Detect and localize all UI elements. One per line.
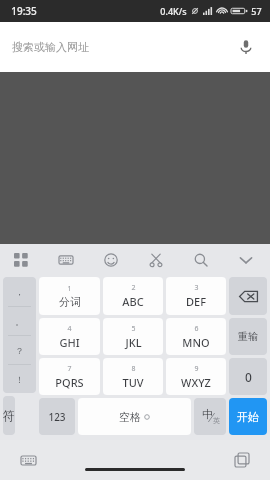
staticText: GHI bbox=[59, 335, 80, 350]
staticText: 123 bbox=[48, 410, 66, 424]
button[interactable]: Recent apps bbox=[230, 448, 254, 472]
staticText: 中 bbox=[202, 407, 213, 421]
button[interactable]: 6 bbox=[166, 318, 226, 355]
button[interactable]: Emoji bbox=[100, 249, 122, 271]
staticText: 英 bbox=[213, 416, 220, 425]
button[interactable]: 8 bbox=[103, 358, 163, 395]
staticText: 6 bbox=[194, 324, 199, 334]
button[interactable]: Search bbox=[190, 249, 212, 271]
button[interactable]: Switch keyboard bbox=[16, 448, 40, 472]
staticText: 8 bbox=[131, 364, 136, 374]
button[interactable]: 搜索或输入网址 bbox=[0, 22, 270, 72]
button[interactable]: 1 bbox=[39, 277, 100, 315]
staticText: 2 bbox=[131, 283, 136, 293]
button[interactable]: Backspace bbox=[229, 277, 267, 315]
button[interactable]: 4 bbox=[39, 318, 100, 355]
button[interactable]: 5 bbox=[103, 318, 163, 355]
staticText: TUV bbox=[122, 375, 144, 390]
staticText: PQRS bbox=[55, 375, 84, 390]
button[interactable]: ， bbox=[3, 277, 36, 393]
staticText: 3 bbox=[194, 283, 199, 293]
button[interactable]: 符 bbox=[3, 396, 15, 435]
staticText: DEF bbox=[186, 294, 206, 309]
staticText: 1 bbox=[67, 284, 72, 294]
button[interactable]: 中 bbox=[194, 398, 226, 435]
staticText: 分词 bbox=[59, 295, 81, 309]
button[interactable]: Keyboard layouts bbox=[10, 249, 32, 271]
staticText: 搜索或输入网址 bbox=[12, 40, 89, 54]
button[interactable]: 开始 bbox=[229, 398, 267, 435]
button[interactable]: 空格 bbox=[78, 398, 191, 435]
button[interactable]: 3 bbox=[166, 277, 226, 315]
button[interactable]: 0 bbox=[229, 358, 267, 395]
staticText: ！ bbox=[15, 374, 24, 385]
staticText: WXYZ bbox=[181, 375, 211, 390]
button[interactable]: Hide keyboard bbox=[234, 248, 258, 272]
staticText: 重输 bbox=[238, 330, 258, 343]
button[interactable]: 重输 bbox=[229, 318, 267, 355]
staticText: 4 bbox=[67, 324, 72, 334]
staticText: ？ bbox=[15, 345, 24, 356]
staticText: 9 bbox=[194, 364, 199, 374]
staticText: 空格 bbox=[119, 410, 141, 424]
staticText: 符 bbox=[3, 408, 15, 423]
button[interactable]: Voice search bbox=[234, 35, 258, 59]
button[interactable]: 7 bbox=[39, 358, 100, 395]
staticText: 7 bbox=[67, 364, 72, 374]
staticText: ABC bbox=[122, 294, 144, 309]
staticText: JKL bbox=[125, 335, 142, 350]
button[interactable]: Clipboard bbox=[145, 249, 167, 271]
staticText: 开始 bbox=[237, 410, 259, 424]
button[interactable]: 2 bbox=[103, 277, 163, 315]
staticText: ， bbox=[15, 286, 24, 297]
staticText: 0 bbox=[245, 369, 252, 385]
button[interactable]: 9 bbox=[166, 358, 226, 395]
staticText: 5 bbox=[131, 324, 136, 334]
staticText: 57 bbox=[251, 5, 262, 17]
button[interactable]: 123 bbox=[39, 398, 75, 435]
button[interactable]: Keyboard bbox=[55, 249, 77, 271]
staticText: 。 bbox=[15, 316, 24, 327]
staticText: MNO bbox=[182, 335, 210, 350]
staticText: 0.4K/s bbox=[160, 5, 187, 17]
staticText: 19:35 bbox=[11, 4, 37, 18]
